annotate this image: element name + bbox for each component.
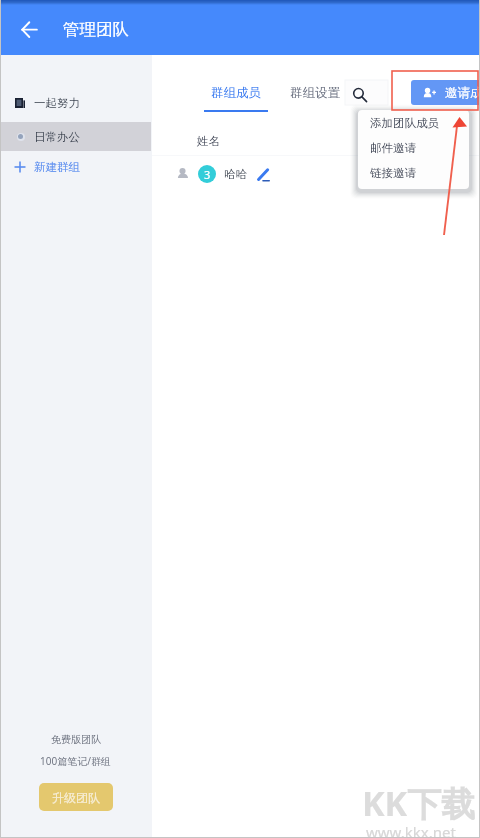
button[interactable]: Edit [255,166,271,182]
staticText: 姓名 [197,134,220,148]
button[interactable]: 日常办公 [0,122,151,151]
staticText: 添加团队成员 [370,116,439,130]
staticText: 100篇笔记/群组 [40,754,111,768]
button[interactable]: 一起努力 [0,88,151,117]
staticText: 免费版团队 [51,733,101,746]
button[interactable]: 升级团队 [39,783,113,811]
staticText: 管理团队 [63,19,129,40]
staticText: 哈哈 [224,167,247,181]
button[interactable]: 邮件邀请 [357,135,469,160]
staticText: 邀请成 [445,85,480,101]
staticText: 新建群组 [34,160,80,174]
staticText: 一起努力 [34,96,80,110]
button[interactable]: Search [349,84,370,105]
staticText: 日常办公 [34,130,80,144]
staticText: 群组设置 [290,85,340,101]
staticText: KK下载 [362,780,476,826]
staticText: 升级团队 [52,790,100,805]
staticText: 3 [204,167,211,182]
button[interactable]: 链接邀请 [357,160,469,185]
button[interactable]: 3 [151,162,480,185]
staticText: 群组成员 [211,85,261,101]
button[interactable]: 邀请成 [411,80,480,105]
button[interactable]: 群组成员 [203,85,269,112]
staticText: 链接邀请 [370,166,416,180]
button[interactable]: 添加团队成员 [357,110,469,135]
button[interactable]: 新建群组 [0,153,151,181]
staticText: www.kkx.net [366,822,456,838]
staticText: 邮件邀请 [370,141,416,155]
button[interactable]: Back [15,15,42,42]
button[interactable]: 群组设置 [288,85,341,105]
